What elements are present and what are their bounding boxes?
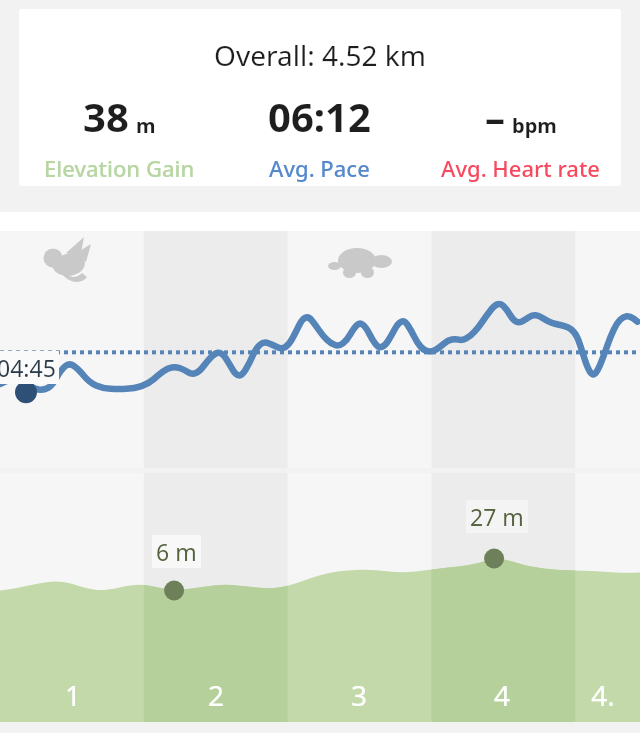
staticText: – — [485, 89, 505, 143]
staticText: 6 m — [156, 536, 197, 567]
staticText: 2 — [201, 676, 231, 714]
staticText: m — [136, 112, 156, 139]
button[interactable]: 6 m — [0, 473, 640, 723]
staticText: 3 — [344, 676, 374, 714]
staticText: bpm — [512, 112, 557, 139]
button[interactable]: 38 — [19, 89, 219, 183]
staticText: 27 m — [470, 501, 524, 532]
staticText: Avg. Heart rate — [441, 153, 600, 183]
button[interactable]: Overall: 4.52 km — [19, 9, 621, 186]
button[interactable]: 04:45 — [0, 231, 640, 468]
staticText: 04:45 — [0, 352, 56, 383]
button[interactable]: – — [420, 89, 621, 183]
staticText: 06:12 — [268, 89, 371, 143]
staticText: 4 — [487, 676, 517, 714]
button[interactable]: 06:12 — [219, 89, 420, 183]
staticText: Overall: 4.52 km — [19, 36, 621, 74]
staticText: 4.5 — [588, 676, 618, 733]
staticText: 1 — [58, 676, 88, 714]
staticText: Elevation Gain — [44, 153, 195, 183]
staticText: Avg. Pace — [269, 153, 370, 183]
staticText: 38 — [83, 89, 129, 143]
